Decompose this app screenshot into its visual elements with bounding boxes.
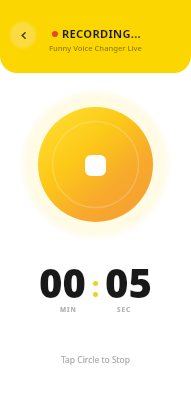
staticText: Funny Voice Changer Live <box>49 43 142 53</box>
staticText: RECORDING... <box>62 26 141 41</box>
staticText: 05 <box>105 255 152 309</box>
staticText: SEC <box>117 305 132 314</box>
staticText: Tap Circle to Stop <box>61 354 130 366</box>
button[interactable]: Stop recording <box>19 88 172 241</box>
staticText: 00 <box>39 255 86 309</box>
button[interactable]: Back <box>8 20 38 50</box>
staticText: MIN <box>60 305 77 314</box>
